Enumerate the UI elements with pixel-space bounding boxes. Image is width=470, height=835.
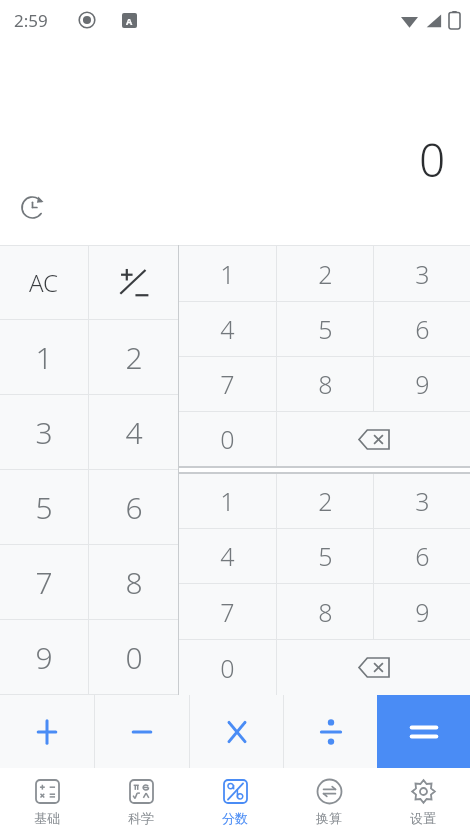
staticText: 7 (35, 562, 53, 603)
staticText: 8 (125, 562, 143, 603)
staticText: 2 (125, 337, 143, 378)
staticText: 2 (318, 257, 333, 291)
staticText: 4 (125, 412, 143, 453)
button[interactable]: 8 (89, 545, 178, 619)
staticText: 6 (415, 539, 430, 573)
staticText: 1 (35, 337, 53, 378)
button[interactable]: 3 (0, 395, 88, 469)
staticText: AC (29, 266, 59, 299)
button[interactable]: 3 (374, 246, 470, 301)
button[interactable]: Backspace (277, 640, 470, 695)
button[interactable]: Plus (0, 695, 94, 768)
staticText: 0 (419, 128, 446, 191)
button[interactable]: 9 (374, 584, 470, 639)
button[interactable]: 6 (374, 529, 470, 583)
staticText: 6 (125, 487, 143, 528)
button[interactable]: 4 (89, 395, 178, 469)
staticText: 2 (318, 484, 333, 518)
button[interactable]: History (16, 191, 48, 223)
staticText: 1 (220, 484, 235, 518)
staticText: 7 (220, 367, 235, 401)
button[interactable]: 2 (277, 474, 373, 528)
staticText: 3 (35, 412, 53, 453)
staticText: 0 (220, 422, 235, 456)
button[interactable]: 0 (89, 620, 178, 694)
staticText: A (126, 15, 133, 27)
button[interactable]: 7 (179, 584, 276, 639)
button[interactable]: 0 (179, 412, 276, 466)
button[interactable]: 1 (179, 474, 276, 528)
staticText: 4 (220, 539, 235, 573)
button[interactable]: 1 (0, 320, 88, 394)
staticText: 5 (35, 487, 53, 528)
staticText: 9 (415, 595, 430, 629)
staticText: 分数 (222, 810, 248, 826)
button[interactable]: 分数 (188, 768, 282, 835)
button[interactable]: Plus minus (89, 246, 178, 319)
button[interactable]: 基础 (0, 768, 94, 835)
button[interactable]: 2 (277, 246, 373, 301)
staticText: 4 (220, 312, 235, 346)
staticText: 0 (125, 637, 143, 678)
button[interactable]: 7 (179, 357, 276, 411)
button[interactable]: Backspace (277, 412, 470, 466)
button[interactable]: 5 (0, 470, 88, 544)
staticText: 2:59 (14, 9, 48, 32)
staticText: 0 (220, 651, 235, 685)
staticText: 8 (318, 595, 333, 629)
button[interactable]: 8 (277, 584, 373, 639)
staticText: 换算 (316, 810, 342, 826)
button[interactable]: 换算 (282, 768, 376, 835)
staticText: 5 (318, 312, 333, 346)
button[interactable]: 9 (374, 357, 470, 411)
staticText: 设置 (410, 810, 436, 826)
staticText: 8 (318, 367, 333, 401)
staticText: 1 (220, 257, 235, 291)
button[interactable]: 设置 (376, 768, 470, 835)
staticText: 7 (220, 595, 235, 629)
staticText: 基础 (34, 810, 60, 826)
button[interactable]: 5 (277, 529, 373, 583)
staticText: 6 (415, 312, 430, 346)
button[interactable]: 0 (179, 640, 276, 695)
button[interactable]: AC (0, 246, 88, 319)
button[interactable]: Divide (284, 695, 377, 768)
staticText: 9 (35, 637, 53, 678)
button[interactable]: 科学 (94, 768, 188, 835)
button[interactable]: 6 (374, 302, 470, 356)
staticText: 3 (415, 257, 430, 291)
button[interactable]: 5 (277, 302, 373, 356)
button[interactable]: 7 (0, 545, 88, 619)
staticText: 3 (415, 484, 430, 518)
button[interactable]: Minus (95, 695, 189, 768)
button[interactable]: 8 (277, 357, 373, 411)
staticText: 9 (415, 367, 430, 401)
button[interactable]: 4 (179, 529, 276, 583)
button[interactable]: 9 (0, 620, 88, 694)
button[interactable]: 1 (179, 246, 276, 301)
button[interactable]: 6 (89, 470, 178, 544)
button[interactable]: 3 (374, 474, 470, 528)
button[interactable]: Equals (377, 695, 470, 768)
button[interactable]: Multiply (190, 695, 283, 768)
staticText: 5 (318, 539, 333, 573)
staticText: 科学 (128, 810, 154, 826)
button[interactable]: 4 (179, 302, 276, 356)
button[interactable]: 2 (89, 320, 178, 394)
